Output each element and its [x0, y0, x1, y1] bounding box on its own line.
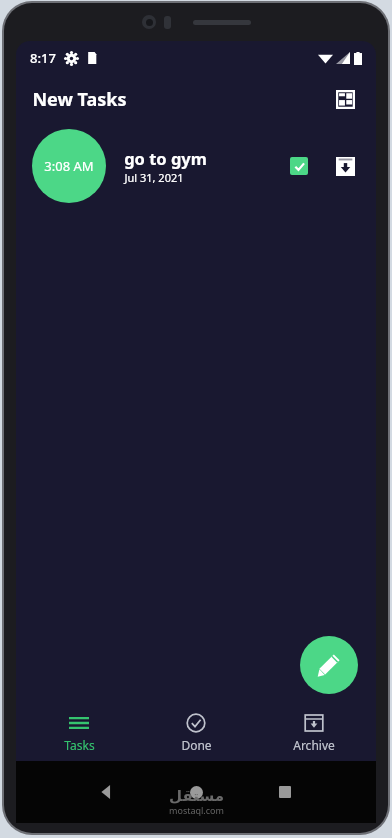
button[interactable]: Mark done	[284, 151, 314, 181]
button[interactable]: Done	[141, 705, 251, 761]
staticText: Done	[181, 737, 212, 753]
button[interactable]: 3:08 AM	[16, 123, 376, 209]
button[interactable]: Archive	[330, 151, 360, 181]
staticText: 3:08 AM	[44, 157, 94, 175]
button[interactable]: Recents	[265, 772, 305, 812]
staticText: 8:17	[30, 49, 56, 67]
button[interactable]: Back	[87, 772, 127, 812]
button[interactable]: Home	[176, 772, 216, 812]
button[interactable]: Tasks	[24, 705, 134, 761]
button[interactable]: Archive	[259, 705, 369, 761]
button[interactable]: Add task	[300, 636, 358, 694]
staticText: go to gym	[124, 147, 207, 169]
staticText: New Tasks	[32, 87, 127, 112]
staticText: mostaql.com	[169, 804, 224, 816]
staticText: مستقل	[169, 787, 224, 804]
staticText: Archive	[293, 737, 335, 753]
staticText: Tasks	[64, 737, 95, 753]
button[interactable]: Calculator	[330, 84, 360, 114]
staticText: Jul 31, 2021	[124, 170, 184, 185]
